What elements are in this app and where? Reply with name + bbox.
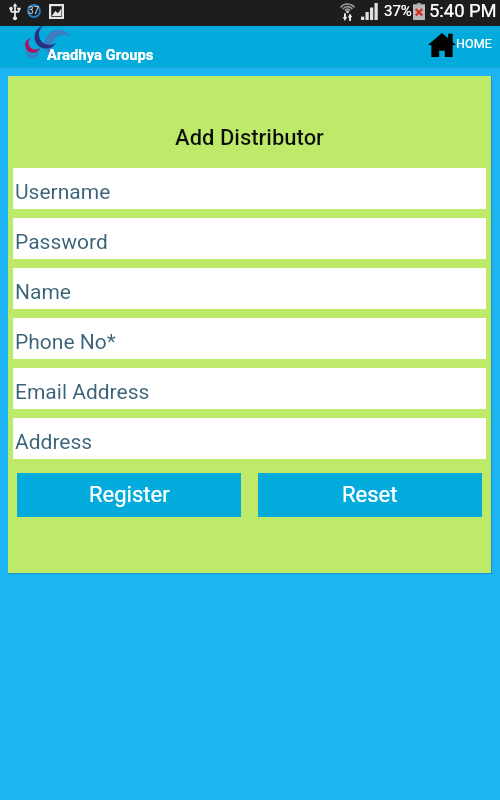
button[interactable]: Reset [258,473,482,517]
staticText: Username [15,180,111,205]
staticText: Name [15,280,71,305]
staticText: Email Address [15,380,150,405]
staticText: Reset [342,482,398,508]
button[interactable]: Address [13,418,486,459]
button[interactable]: Register [17,473,241,517]
staticText: Add Distributor [8,125,491,151]
staticText: Phone No* [15,330,116,355]
button[interactable]: Password [13,218,486,259]
staticText: 5:40 PM [429,0,497,22]
staticText: Password [15,230,108,255]
button[interactable]: Home [420,26,500,67]
button[interactable]: Username [13,168,486,209]
button[interactable]: Email Address [13,368,486,409]
staticText: Register [89,482,170,508]
staticText: 37 [28,5,40,17]
staticText: Aradhya Groups [47,46,154,63]
staticText: Address [15,430,93,455]
staticText: HOME [456,36,492,51]
button[interactable]: Phone No* [13,318,486,359]
button[interactable]: Name [13,268,486,309]
staticText: 37% [384,2,412,20]
